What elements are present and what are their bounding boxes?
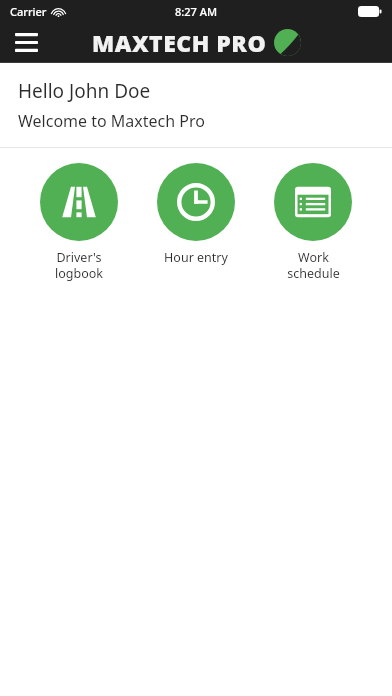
button[interactable]: Driver's logbook: [29, 163, 129, 281]
staticText: Carrier: [10, 4, 47, 19]
staticText: Welcome to Maxtech Pro: [18, 110, 205, 132]
staticText: Work schedule: [287, 249, 340, 281]
staticText: MAXTECH PRO: [92, 27, 267, 58]
staticText: Hello John Doe: [18, 78, 151, 104]
staticText: Driver's logbook: [55, 249, 103, 281]
button[interactable]: Open navigation menu: [8, 24, 44, 60]
staticText: 8:27 AM: [175, 4, 218, 19]
staticText: Hour entry: [164, 249, 228, 266]
button[interactable]: Hour entry: [146, 163, 246, 266]
button[interactable]: Work schedule: [263, 163, 363, 281]
